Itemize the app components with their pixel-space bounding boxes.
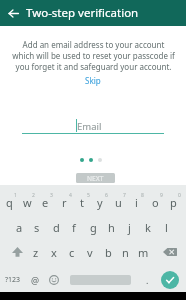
button[interactable]: Emoji [45,268,63,292]
button[interactable]: n [116,240,134,264]
button[interactable]: h [102,215,120,239]
staticText: Add an email address to your account whi… [12,39,175,72]
staticText: b [105,245,112,260]
button[interactable]: f [65,215,83,239]
button[interactable]: w [18,190,36,214]
button[interactable]: Space [66,268,136,292]
button[interactable]: j [120,215,138,239]
staticText: n [122,245,129,260]
staticText: l [165,220,168,235]
staticText: x [51,245,57,260]
staticText: ?123 [5,275,21,285]
staticText: a [16,220,23,235]
button[interactable]: @ [26,268,44,292]
button[interactable]: r [55,190,73,214]
staticText: e [42,195,49,210]
button[interactable]: k [139,215,157,239]
staticText: 2 [32,192,35,199]
button[interactable]: t [73,190,91,214]
button[interactable]: . [139,268,155,292]
staticText: 1 [14,192,17,199]
staticText: t [80,195,84,210]
button[interactable]: q [0,190,18,214]
button[interactable]: e [36,190,54,214]
staticText: 3 [50,192,53,199]
staticText: r [62,195,67,210]
staticText: c [69,245,75,260]
staticText: Skip [85,75,101,86]
staticText: k [145,220,151,235]
staticText: q [6,195,13,210]
button[interactable]: i [127,190,145,214]
staticText: s [34,220,40,235]
button[interactable]: d [47,215,65,239]
staticText: 6 [105,192,108,199]
button[interactable]: ?123 [0,268,26,292]
button[interactable]: v [81,240,99,264]
staticText: 7 [123,192,126,199]
staticText: . [146,274,149,286]
staticText: h [108,220,115,235]
staticText: 0 [178,192,181,199]
button[interactable]: c [63,240,81,264]
button[interactable]: u [109,190,127,214]
button[interactable]: z [27,240,45,264]
staticText: p [170,195,177,210]
button[interactable]: l [157,215,175,239]
button[interactable]: NEXT [76,173,115,183]
button[interactable]: b [99,240,117,264]
button[interactable]: Enter [158,267,184,293]
button[interactable]: Back [4,4,22,22]
button[interactable]: Backspace [156,240,183,264]
staticText: f [72,220,76,235]
button[interactable]: x [45,240,63,264]
staticText: @ [31,274,40,286]
staticText: 4 [69,192,72,199]
staticText: 8 [141,192,144,199]
staticText: w [23,195,32,210]
staticText: o [152,195,159,210]
staticText: i [135,195,138,210]
staticText: z [33,245,39,260]
button[interactable]: p [164,190,182,214]
staticText: 9 [160,192,163,199]
staticText: j [128,220,131,235]
staticText: u [115,195,122,210]
staticText: v [87,245,93,260]
button[interactable]: g [84,215,102,239]
staticText: Email [77,120,102,133]
button[interactable]: Skip [79,74,107,87]
button[interactable]: s [28,215,46,239]
staticText: d [53,220,60,235]
staticText: m [138,245,149,260]
button[interactable]: o [146,190,164,214]
staticText: Two-step verification [26,5,139,21]
staticText: NEXT [87,174,104,183]
staticText: 5 [87,192,90,199]
staticText: g [90,220,97,235]
button[interactable]: a [10,215,28,239]
button[interactable]: m [134,240,152,264]
staticText: y [97,195,103,210]
button[interactable]: Shift [3,240,31,264]
button[interactable]: y [91,190,109,214]
